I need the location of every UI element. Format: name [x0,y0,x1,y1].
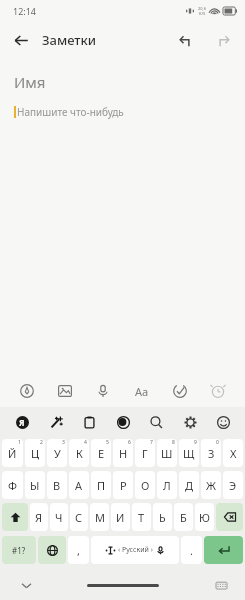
staticText: М [95,510,105,525]
staticText: З [208,446,215,461]
button[interactable]: Г [135,439,155,467]
staticText: 9 [194,439,197,446]
staticText: 6 [128,439,131,446]
button[interactable]: Ф [2,471,23,499]
button[interactable]: П [91,471,111,499]
staticText: Aa [135,384,149,399]
button[interactable]: Shift [2,503,28,531]
button[interactable]: К [69,439,89,467]
button[interactable]: А [69,471,89,499]
button[interactable]: Voice input [90,378,116,404]
staticText: П [97,478,106,493]
button[interactable]: Translate [111,410,135,434]
button[interactable]: О [135,471,155,499]
button[interactable]: Д [179,471,199,499]
staticText: 7 [150,439,153,446]
button[interactable]: Settings [178,410,202,434]
button[interactable]: Space [91,536,179,564]
staticText: Я [19,417,25,428]
button[interactable]: Yandex [10,410,34,434]
staticText: У [54,446,61,461]
button[interactable]: Reminder [205,378,231,404]
button[interactable]: Ь [153,503,172,531]
button[interactable]: Search [144,410,168,434]
button[interactable]: Clipboard [77,410,101,434]
staticText: ‹ Русский › [118,545,153,555]
button[interactable]: Back [8,27,34,53]
button[interactable]: Р [113,471,133,499]
button[interactable]: Ш [157,439,177,467]
staticText: 2 [40,439,43,446]
button[interactable]: Х [223,439,243,467]
button[interactable]: Й [2,439,23,467]
button[interactable]: Н [113,439,133,467]
staticText: Ь [159,510,166,525]
staticText: Х [230,446,237,461]
button[interactable]: В [47,471,67,499]
staticText: Заметки [42,31,97,49]
button[interactable]: Э [223,471,243,499]
staticText: 8 [172,439,175,446]
button[interactable]: Undo [173,27,199,53]
button[interactable]: Enter [204,536,243,564]
button[interactable]: Т [132,503,151,531]
staticText: Т [138,510,145,525]
button[interactable]: Ч [50,503,68,531]
staticText: С [75,510,83,525]
button[interactable]: Switch keyboard [211,575,231,595]
button[interactable]: #1? [2,536,36,564]
button[interactable]: Magic [44,410,68,434]
button[interactable]: Backspace [216,503,243,531]
staticText: К [76,446,83,461]
staticText: И [116,510,125,525]
button[interactable]: Е [91,439,111,467]
button[interactable]: Checklist [167,378,193,404]
staticText: В [53,478,61,493]
staticText: Г [142,446,148,461]
staticText: А [75,478,83,493]
button[interactable]: Б [174,503,193,531]
staticText: Ж [206,478,216,493]
staticText: #1? [12,545,26,556]
staticText: Напишите что-нибудь [17,105,124,119]
button[interactable]: . [181,536,202,564]
button[interactable]: Draw [14,378,40,404]
button[interactable]: Insert image [52,378,78,404]
button[interactable]: И [111,503,130,531]
button[interactable]: У [47,439,67,467]
staticText: . [190,543,193,558]
button[interactable]: Hide keyboard [16,575,36,595]
staticText: 1 [18,439,21,446]
button[interactable]: С [70,503,88,531]
button[interactable]: Я [30,503,48,531]
staticText: Я [35,510,43,525]
button[interactable]: Щ [179,439,199,467]
staticText: О [141,478,150,493]
staticText: 20,6 [198,6,206,11]
button[interactable]: Change language [38,536,66,564]
button[interactable]: Ы [25,471,45,499]
staticText: Ш [161,446,173,461]
button[interactable]: Ю [195,503,214,531]
button[interactable]: М [90,503,109,531]
button[interactable]: Emoji [211,410,235,434]
button[interactable]: Text format [129,378,155,404]
button[interactable]: Л [157,471,177,499]
staticText: Ч [55,510,63,525]
staticText: Ю [199,510,210,525]
staticText: 5 [106,439,109,446]
button[interactable]: Ц [25,439,45,467]
staticText: Ы [30,478,40,493]
button[interactable]: Ж [201,471,221,499]
staticText: 12:14 [13,5,37,17]
button[interactable]: З [201,439,221,467]
staticText: 4 [84,439,87,446]
button[interactable]: Redo [209,27,235,53]
staticText: 3 [62,439,65,446]
button[interactable]: , [68,536,89,564]
staticText: Р [120,478,127,493]
staticText: Л [163,478,171,493]
staticText: Имя [14,72,46,92]
staticText: Ф [8,478,17,493]
staticText: Э [229,478,237,493]
